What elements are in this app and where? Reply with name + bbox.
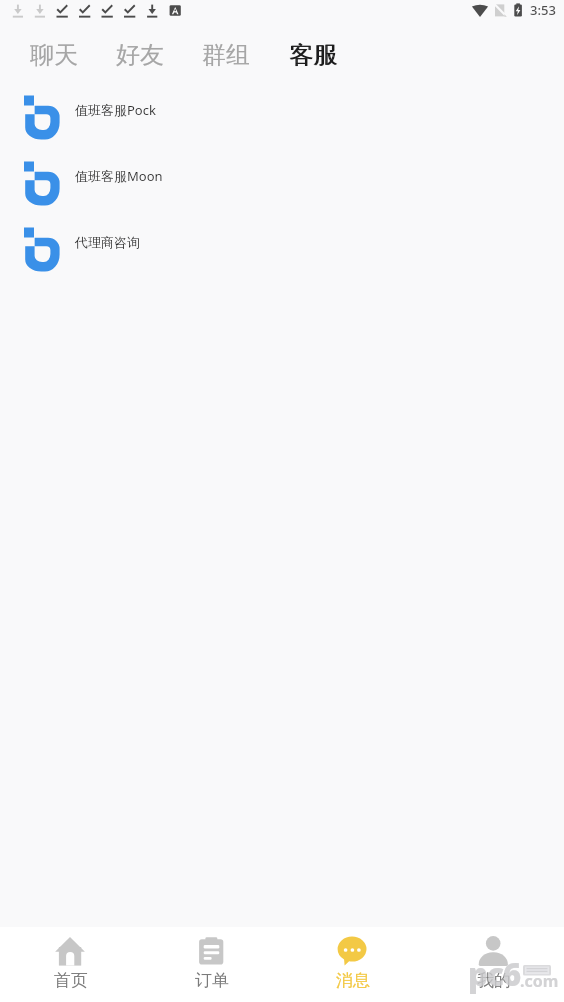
staticText: 客服 [290, 40, 338, 70]
staticText: .com [520, 970, 559, 992]
staticText: pc6 [468, 953, 521, 995]
button[interactable]: 订单 [141, 927, 282, 1002]
staticText: 客服 [289, 40, 337, 70]
staticText: 3:53 [530, 1, 556, 19]
button[interactable]: 群组 [188, 26, 264, 84]
button[interactable]: 首页 [0, 927, 141, 1002]
button[interactable]: 消息 [282, 927, 423, 1002]
button[interactable]: 我的 [423, 927, 564, 1002]
staticText: 值班客服Pock [75, 101, 156, 119]
button[interactable]: 代理商咨询 [0, 216, 564, 282]
staticText: 消息 [336, 970, 370, 991]
staticText: 首页 [54, 970, 88, 991]
button[interactable]: 客服 [275, 26, 351, 84]
button[interactable]: 值班客服Pock [0, 84, 564, 150]
staticText: 我的 [477, 970, 511, 991]
staticText: 好友 [116, 40, 164, 70]
button[interactable]: 值班客服Moon [0, 150, 564, 216]
staticText: 群组 [202, 40, 250, 70]
staticText: 代理商咨询 [75, 234, 140, 250]
staticText: 值班客服Moon [75, 167, 163, 185]
button[interactable]: 好友 [102, 26, 178, 84]
button[interactable]: 聊天 [16, 26, 92, 84]
staticText: 聊天 [30, 40, 78, 70]
staticText: 订单 [195, 970, 229, 991]
